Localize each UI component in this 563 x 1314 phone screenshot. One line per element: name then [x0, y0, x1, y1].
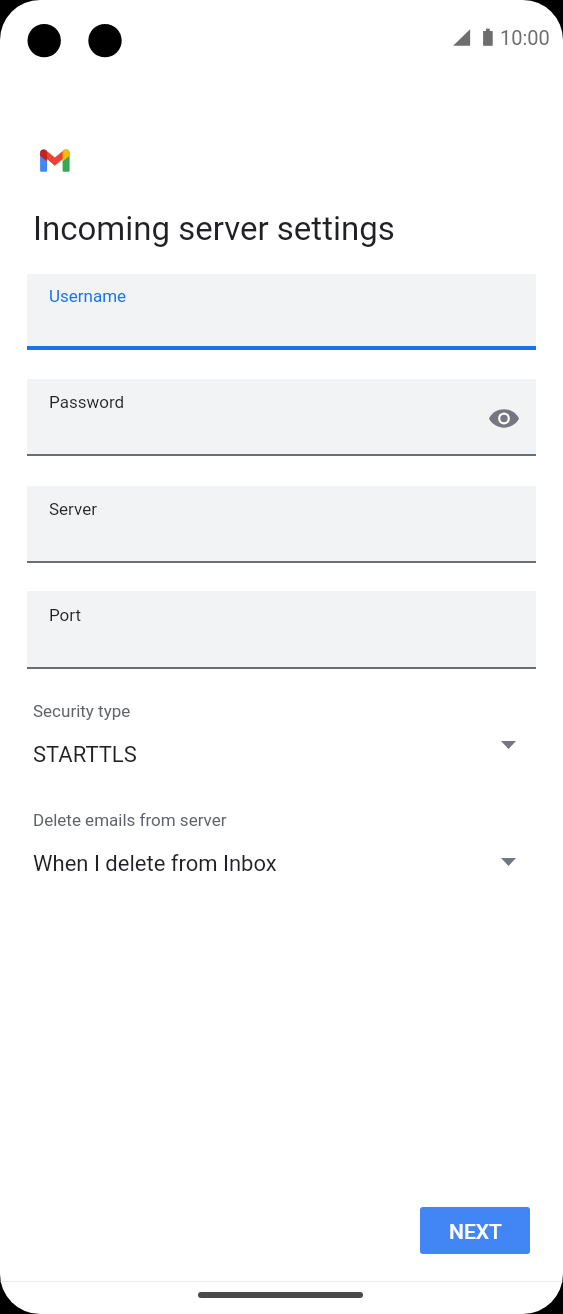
- staticText: NEXT: [449, 1220, 502, 1245]
- staticText: Password: [49, 392, 125, 412]
- staticText: 10:00: [500, 26, 550, 49]
- staticText: Delete emails from server: [33, 810, 227, 830]
- button[interactable]: NEXT: [420, 1207, 530, 1254]
- staticText: Incoming server settings: [33, 209, 395, 248]
- staticText: Port: [49, 605, 82, 625]
- staticText: When I delete from Inbox: [33, 851, 277, 877]
- button[interactable]: Delete emails from server: [27, 801, 536, 889]
- staticText: Security type: [33, 701, 131, 721]
- staticText: Server: [49, 499, 97, 519]
- staticText: STARTTLS: [33, 742, 137, 768]
- button[interactable]: Show password: [488, 402, 520, 434]
- button[interactable]: Security type: [27, 692, 536, 780]
- button[interactable]: Port: [27, 591, 536, 669]
- button[interactable]: Server: [27, 486, 536, 563]
- button[interactable]: Username: [27, 274, 536, 350]
- staticText: Username: [49, 286, 127, 306]
- button[interactable]: Password: [27, 379, 536, 456]
